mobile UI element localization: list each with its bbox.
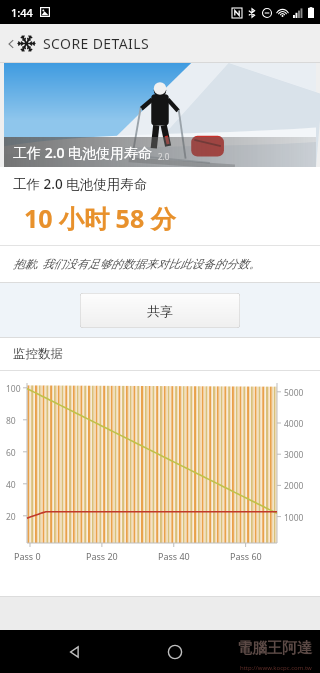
staticText: 抱歉, 我们没有足够的数据来对比此设备的分数。 [13,256,261,272]
staticText: 4000 [284,418,304,430]
staticText: Pass 60 [230,550,262,562]
staticText: 1000 [284,512,304,524]
staticText: 1:44 [11,5,33,20]
staticText: 共享 [147,303,173,319]
staticText: 工作 2.0 电池使用寿命 [13,175,148,193]
staticText: 工作 2.0 电池使用寿命 [13,143,153,162]
button[interactable]: Back [62,639,88,665]
staticText: Pass 20 [86,550,118,562]
staticText: 2.0 [158,151,170,162]
staticText: 電腦王阿達 [237,639,312,658]
staticText: 100 [6,383,21,395]
staticText: http://www.kocpc.com.tw [240,664,312,672]
button[interactable]: Back [3,34,153,53]
staticText: 20 [6,511,16,523]
staticText: 80 [6,415,16,427]
staticText: 2000 [284,480,304,492]
staticText: SCORE DETAILS [43,34,150,53]
staticText: 60 [6,447,16,459]
staticText: 监控数据 [13,346,63,362]
staticText: 5000 [284,387,304,399]
staticText: Pass 0 [14,550,41,562]
button[interactable]: 共享 [80,293,240,328]
button[interactable]: Home [165,642,185,662]
staticText: Pass 40 [158,550,190,562]
staticText: 40 [6,479,16,491]
staticText: 3000 [284,449,304,461]
staticText: 10 小时 58 分 [24,201,176,235]
